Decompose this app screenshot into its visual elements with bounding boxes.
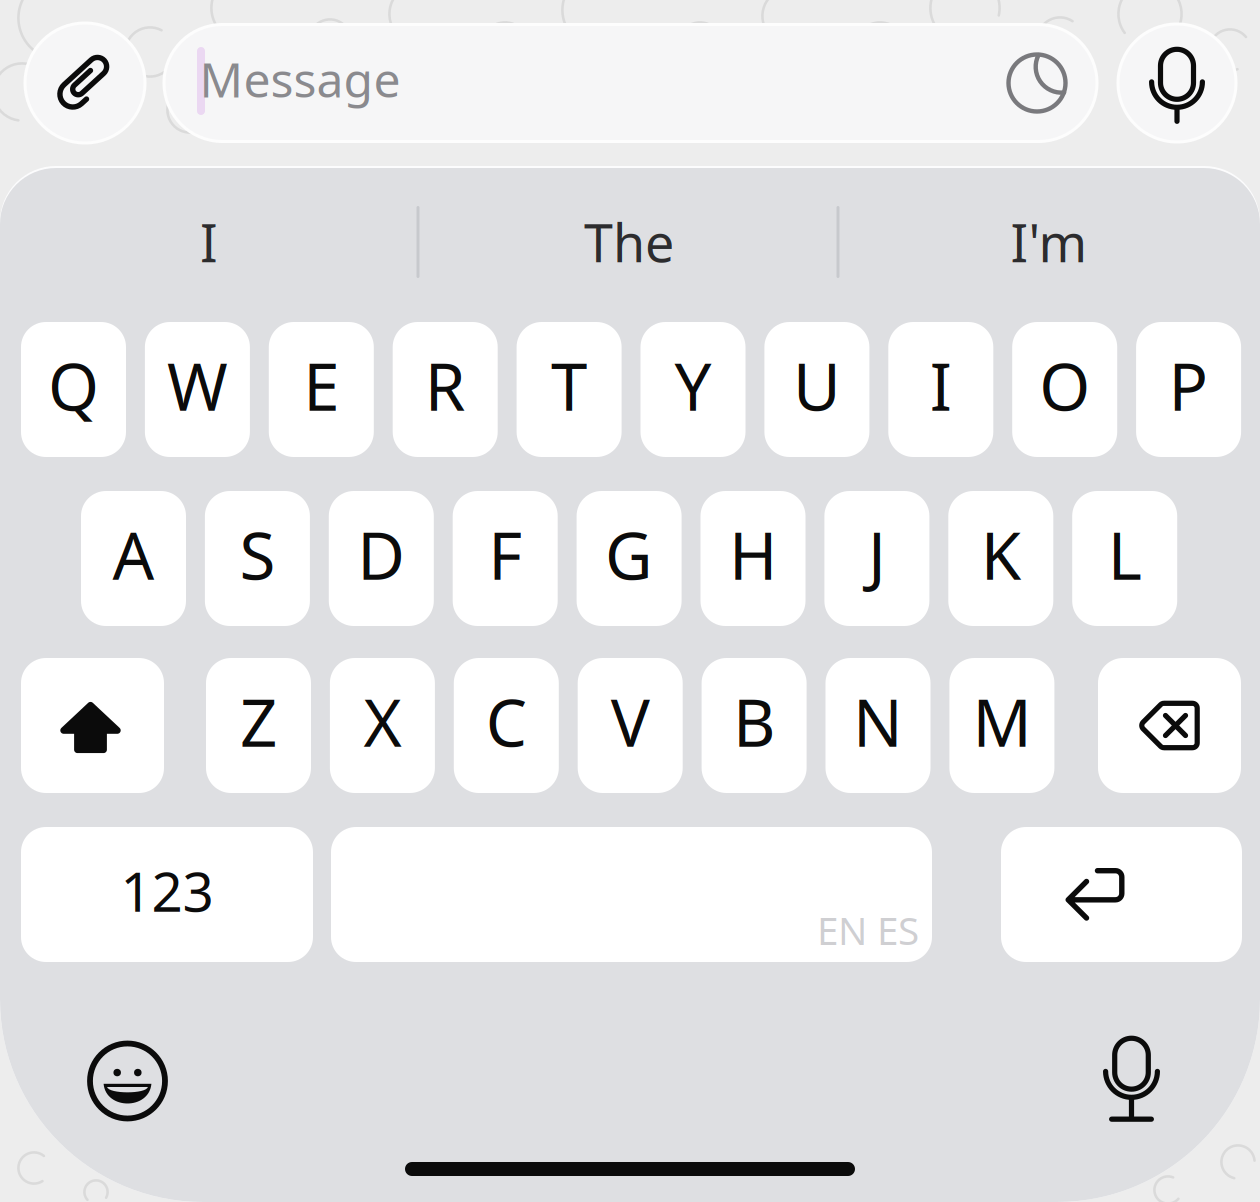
staticText: U — [793, 342, 841, 429]
staticText: Q — [48, 342, 99, 429]
staticText: H — [729, 511, 777, 598]
button[interactable]: I — [888, 322, 993, 457]
button[interactable]: M — [949, 658, 1054, 793]
staticText: I — [930, 342, 952, 429]
staticText: P — [1169, 342, 1209, 429]
button[interactable]: L — [1072, 491, 1177, 626]
button[interactable]: K — [948, 491, 1053, 626]
button[interactable]: D — [329, 491, 434, 626]
staticText: O — [1039, 342, 1090, 429]
button[interactable]: Y — [640, 322, 745, 457]
button[interactable]: T — [517, 322, 622, 457]
staticText: Message — [199, 47, 400, 111]
staticText: G — [605, 511, 653, 598]
button[interactable]: Dictation — [1071, 1021, 1191, 1141]
button[interactable]: Z — [206, 658, 311, 793]
button[interactable]: I'm — [839, 192, 1259, 292]
staticText: Y — [674, 342, 711, 429]
button[interactable]: X — [330, 658, 435, 793]
staticText: N — [853, 678, 903, 765]
button[interactable]: P — [1136, 322, 1241, 457]
staticText: T — [551, 342, 587, 429]
staticText: D — [357, 511, 405, 598]
button[interactable]: I — [0, 192, 418, 292]
button[interactable]: Space — [331, 827, 932, 962]
staticText: A — [112, 511, 154, 598]
staticText: K — [981, 511, 1021, 598]
staticText: The — [584, 207, 674, 277]
staticText: B — [733, 678, 775, 765]
button[interactable]: O — [1012, 322, 1117, 457]
button[interactable]: Delete — [1098, 658, 1241, 793]
button[interactable]: Numbers — [21, 827, 313, 962]
button[interactable]: U — [764, 322, 869, 457]
button[interactable]: Stickers — [992, 38, 1082, 128]
staticText: L — [1108, 511, 1142, 598]
staticText: EN ES — [817, 904, 919, 956]
staticText: J — [868, 511, 886, 598]
staticText: S — [239, 511, 275, 598]
button[interactable]: J — [824, 491, 929, 626]
staticText: C — [486, 678, 527, 765]
staticText: E — [303, 342, 339, 429]
button[interactable]: B — [702, 658, 807, 793]
button[interactable]: Voice message — [1118, 24, 1236, 142]
button[interactable]: H — [700, 491, 805, 626]
button[interactable]: A — [81, 491, 186, 626]
button[interactable]: W — [145, 322, 250, 457]
staticText: I'm — [1010, 207, 1087, 277]
staticText: W — [167, 342, 228, 429]
staticText: M — [972, 678, 1031, 765]
staticText: R — [425, 342, 466, 429]
staticText: V — [611, 678, 650, 765]
staticText: Z — [240, 678, 277, 765]
button[interactable]: Return — [1001, 827, 1242, 962]
button[interactable]: Shift — [21, 658, 164, 793]
button[interactable]: S — [205, 491, 310, 626]
staticText: 123 — [120, 854, 213, 927]
button[interactable]: E — [269, 322, 374, 457]
button[interactable]: N — [825, 658, 930, 793]
staticText: F — [488, 511, 522, 598]
button[interactable]: G — [577, 491, 682, 626]
button[interactable]: R — [393, 322, 498, 457]
button[interactable]: Emoji — [67, 1021, 187, 1141]
button[interactable]: Attach — [25, 23, 145, 143]
button[interactable]: Q — [21, 322, 126, 457]
button[interactable]: C — [454, 658, 559, 793]
staticText: X — [363, 678, 401, 765]
button[interactable]: V — [578, 658, 683, 793]
staticText: I — [200, 207, 218, 277]
button[interactable]: F — [453, 491, 558, 626]
button[interactable]: The — [419, 192, 839, 292]
